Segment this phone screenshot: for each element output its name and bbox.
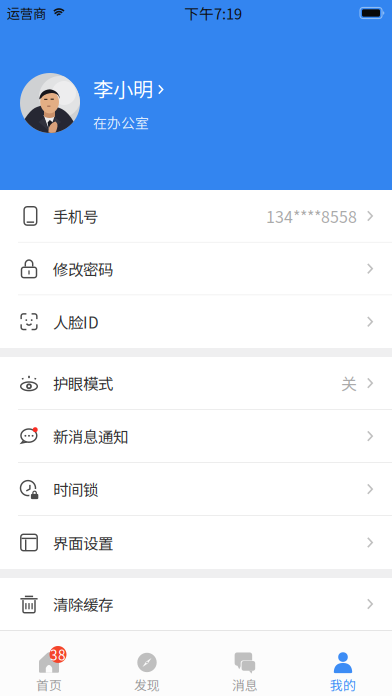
staticText: 清除缓存 bbox=[53, 593, 113, 615]
button[interactable]: 时间锁 bbox=[0, 463, 392, 516]
button[interactable]: 手机号 bbox=[0, 190, 392, 243]
staticText: 人脸ID bbox=[53, 310, 99, 333]
staticText: 下午7:19 bbox=[184, 2, 242, 24]
staticText: 我的 bbox=[330, 675, 356, 694]
button[interactable]: 发现 bbox=[98, 631, 196, 696]
staticText: 时间锁 bbox=[53, 478, 98, 500]
button[interactable]: 界面设置 bbox=[0, 516, 392, 569]
button[interactable]: 我的 bbox=[294, 631, 392, 696]
staticText: 发现 bbox=[134, 675, 160, 694]
staticText: 38 bbox=[50, 645, 66, 664]
staticText: 新消息通知 bbox=[53, 425, 128, 447]
staticText: 护眼模式 bbox=[53, 372, 113, 394]
staticText: 关 bbox=[341, 371, 357, 395]
staticText: 李小明 bbox=[93, 74, 153, 103]
button[interactable]: 消息 bbox=[196, 631, 294, 696]
staticText: 在办公室 bbox=[93, 112, 149, 132]
staticText: 手机号 bbox=[53, 205, 98, 227]
button[interactable]: 清除缓存 bbox=[0, 578, 392, 630]
button[interactable]: 护眼模式 bbox=[0, 357, 392, 410]
button[interactable]: 人脸ID bbox=[0, 295, 392, 348]
button[interactable]: 修改密码 bbox=[0, 243, 392, 295]
staticText: 134****8558 bbox=[266, 204, 357, 228]
staticText: 修改密码 bbox=[53, 257, 113, 280]
staticText: 首页 bbox=[36, 675, 62, 694]
button[interactable]: 新消息通知 bbox=[0, 410, 392, 463]
staticText: 运营商 bbox=[7, 3, 46, 23]
staticText: 消息 bbox=[232, 675, 258, 694]
button[interactable]: 38 bbox=[0, 631, 98, 696]
staticText: 界面设置 bbox=[53, 531, 113, 554]
